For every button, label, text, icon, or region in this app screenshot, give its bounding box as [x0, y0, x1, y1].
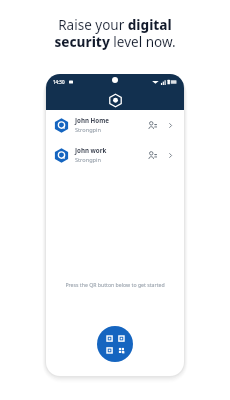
- staticText: Press the QR button below to get started: [64, 281, 166, 288]
- button[interactable]: Scan QR code: [97, 326, 133, 362]
- button[interactable]: John Home: [46, 110, 184, 140]
- button[interactable]: Open account: [164, 119, 176, 131]
- staticText: 14:30: [53, 79, 65, 85]
- other: Strongpin logo: [109, 94, 122, 107]
- staticText: John Home: [75, 116, 109, 124]
- button[interactable]: Manage users: [145, 148, 159, 162]
- staticText: Raise your digital security level now.: [18, 16, 212, 51]
- button[interactable]: John work: [46, 140, 184, 170]
- staticText: Strongpin: [75, 126, 101, 134]
- button[interactable]: Manage users: [145, 118, 159, 132]
- staticText: John work: [75, 146, 107, 154]
- button[interactable]: Open account: [164, 149, 176, 161]
- staticText: Strongpin: [75, 156, 101, 164]
